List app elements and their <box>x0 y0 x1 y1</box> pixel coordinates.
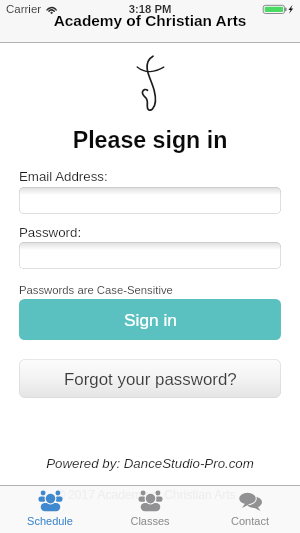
button[interactable]: Sign in <box>19 299 281 340</box>
staticText: Forgot your password? <box>64 370 237 389</box>
staticText: © 2017 Academy of Christian Arts <box>56 488 236 501</box>
staticText: Email Address: <box>19 169 108 184</box>
button[interactable]: People <box>100 485 200 533</box>
staticText: Passwords are Case-Sensitive <box>19 284 173 297</box>
staticText: Classes <box>100 515 200 527</box>
staticText: Carrier <box>6 3 42 16</box>
other: Contact <box>238 490 263 512</box>
staticText: Contact <box>200 515 300 527</box>
button[interactable]: Contact <box>200 485 300 533</box>
staticText: 3:18 PM <box>0 3 300 16</box>
other: People <box>138 490 163 512</box>
staticText: Please sign in <box>0 127 300 153</box>
staticText: Schedule <box>0 515 100 527</box>
staticText: Academy of Christian Arts <box>0 12 300 29</box>
staticText: Powered by: DanceStudio-Pro.com <box>0 456 300 471</box>
button[interactable]: People <box>0 485 100 533</box>
button[interactable]: Forgot your password? <box>19 359 281 398</box>
button[interactable] <box>19 187 281 214</box>
staticText: Password: <box>19 225 82 240</box>
other: People <box>38 490 63 512</box>
button[interactable] <box>19 242 281 269</box>
staticText: Sign in <box>124 310 177 329</box>
